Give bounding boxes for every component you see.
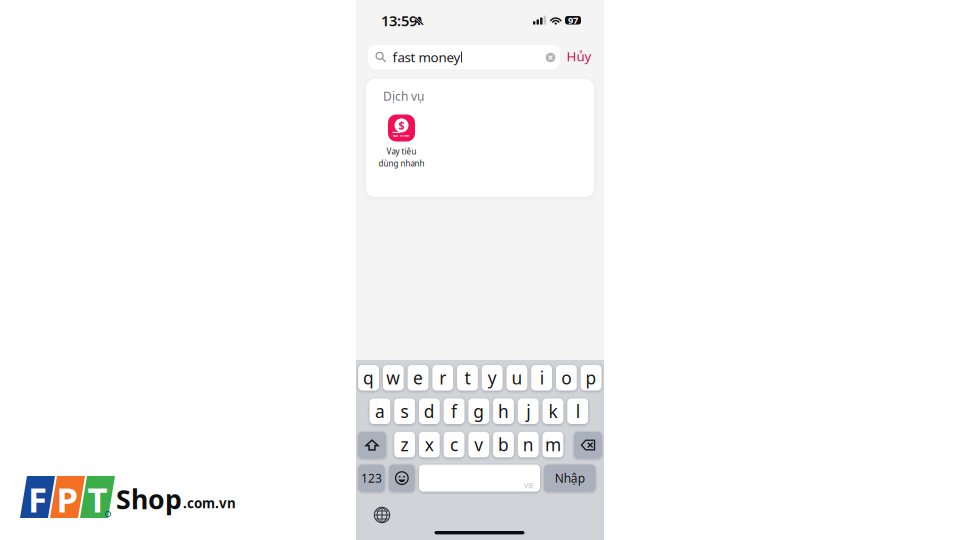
staticText: 123 (361, 470, 382, 486)
button[interactable]: Delete (574, 432, 602, 458)
button[interactable]: Hủy (562, 48, 596, 64)
staticText: s (401, 400, 409, 423)
staticText: FAST MONEY (393, 134, 410, 137)
staticText: o (561, 366, 571, 389)
button[interactable]: i (531, 365, 552, 391)
staticText: t (464, 366, 470, 389)
button[interactable]: o (556, 365, 577, 391)
button[interactable]: k (542, 398, 563, 424)
staticText: VIE (524, 481, 534, 490)
staticText: u (511, 366, 522, 389)
staticText: r (439, 366, 446, 389)
button[interactable]: Space (419, 465, 540, 492)
button[interactable]: t (457, 365, 478, 391)
staticText: d (424, 400, 435, 423)
button[interactable]: y (482, 365, 503, 391)
staticText: j (526, 400, 530, 423)
staticText: Dịch vụ (383, 88, 424, 104)
button[interactable]: l (567, 398, 588, 424)
button[interactable]: b (493, 432, 514, 457)
staticText: a (375, 400, 385, 423)
staticText: v (474, 433, 483, 456)
button[interactable]: s (394, 398, 415, 424)
button[interactable]: $ (371, 114, 431, 164)
button[interactable]: Nhập (544, 465, 595, 492)
button[interactable]: x (419, 432, 440, 457)
button[interactable]: r (432, 365, 453, 391)
button[interactable]: d (419, 398, 440, 424)
button[interactable]: g (468, 398, 489, 424)
button[interactable]: p (581, 365, 601, 391)
button[interactable]: Change keyboard (373, 506, 390, 523)
staticText: z (401, 433, 409, 456)
staticText: Nhập (555, 470, 585, 486)
staticText: e (413, 366, 423, 389)
button[interactable]: f (444, 398, 464, 424)
staticText: fast money (392, 48, 460, 66)
staticText: m (545, 433, 561, 456)
staticText: x (425, 433, 434, 456)
button[interactable]: 123 (358, 465, 385, 492)
staticText: T (87, 476, 107, 522)
staticText: 13:59 (381, 11, 417, 30)
staticText: P (56, 476, 78, 522)
staticText: p (586, 366, 597, 389)
button[interactable]: w (383, 365, 404, 391)
staticText: 97 (568, 14, 578, 26)
staticText: h (498, 400, 509, 423)
staticText: c (450, 433, 458, 456)
staticText: b (498, 433, 509, 456)
button[interactable]: n (518, 432, 539, 457)
button[interactable]: j (518, 398, 539, 424)
staticText: F (28, 476, 47, 522)
button[interactable]: u (506, 365, 527, 391)
button[interactable]: c (444, 432, 464, 457)
button[interactable]: Clear text (544, 51, 556, 63)
staticText: q (363, 366, 374, 389)
staticText: g (473, 400, 484, 423)
staticText: y (488, 366, 497, 389)
staticText: .com.vn (183, 494, 236, 512)
staticText: dùng nhanh (378, 158, 424, 169)
staticText: i (540, 366, 544, 389)
button[interactable]: Search field: fast money (368, 45, 560, 69)
button[interactable]: Shift (358, 432, 386, 458)
button[interactable]: q (358, 365, 379, 391)
button[interactable]: z (394, 432, 415, 457)
button[interactable]: h (493, 398, 514, 424)
staticText: w (386, 366, 400, 389)
staticText: Hủy (566, 47, 591, 65)
staticText: Shop (116, 481, 182, 517)
button[interactable]: a (369, 398, 390, 424)
staticText: Vay tiêu (386, 146, 416, 157)
staticText: l (576, 400, 580, 423)
staticText: $ (398, 118, 404, 132)
button[interactable]: e (408, 365, 428, 391)
button[interactable]: v (468, 432, 489, 457)
staticText: k (548, 400, 557, 423)
staticText: f (451, 400, 457, 423)
button[interactable]: Emoji (389, 465, 415, 492)
button[interactable]: m (542, 432, 563, 457)
staticText: n (523, 433, 534, 456)
